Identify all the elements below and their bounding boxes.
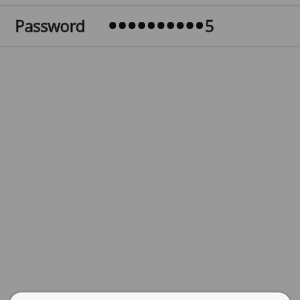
button[interactable]: Password	[0, 6, 300, 46]
staticText: Password	[15, 15, 85, 37]
staticText: 5	[205, 15, 215, 37]
button[interactable]: Close sheet	[0, 0, 300, 300]
button[interactable]	[0, 286, 300, 300]
staticText: Password	[15, 15, 85, 37]
staticText: 5	[205, 15, 215, 37]
